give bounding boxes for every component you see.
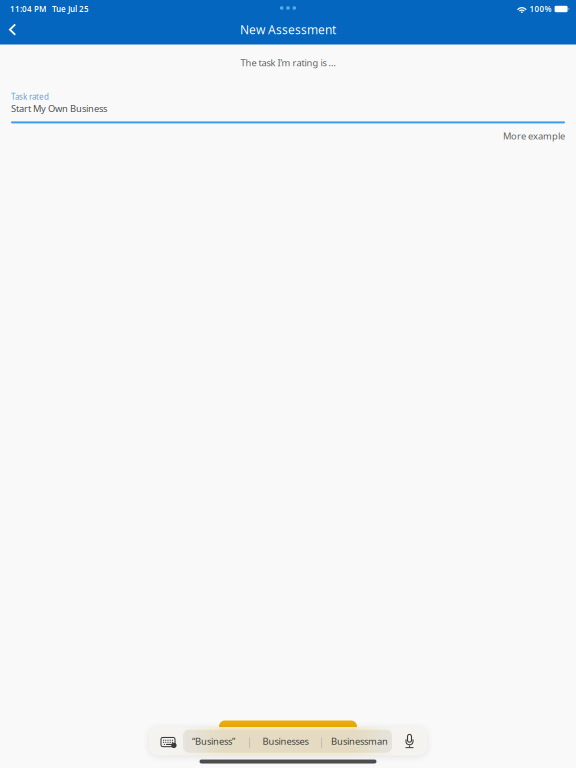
staticText: 100% — [530, 4, 552, 14]
staticText: “Business” — [192, 735, 235, 747]
staticText: Tue Jul 25 — [52, 4, 89, 14]
staticText: The task I’m rating is … — [240, 56, 335, 69]
staticText: | — [318, 734, 324, 748]
button[interactable]: Back — [0, 16, 26, 43]
staticText: Task rated — [11, 91, 49, 102]
button[interactable]: Dictate — [392, 728, 427, 755]
staticText: | — [246, 734, 252, 748]
staticText: Start My Own Business — [11, 102, 107, 115]
button[interactable]: Businessman — [324, 730, 394, 753]
button[interactable]: Switch keyboard — [149, 728, 183, 755]
staticText: New Assessment — [240, 22, 336, 37]
staticText: Businessman — [331, 735, 388, 747]
staticText: Businesses — [262, 735, 308, 747]
button[interactable]: “Business” — [180, 730, 246, 753]
button[interactable]: Submit — [219, 720, 357, 751]
button[interactable]: Businesses — [252, 730, 318, 753]
staticText: More example — [503, 130, 565, 142]
button[interactable]: More example — [503, 129, 565, 142]
staticText: 11:04 PM — [10, 4, 46, 14]
